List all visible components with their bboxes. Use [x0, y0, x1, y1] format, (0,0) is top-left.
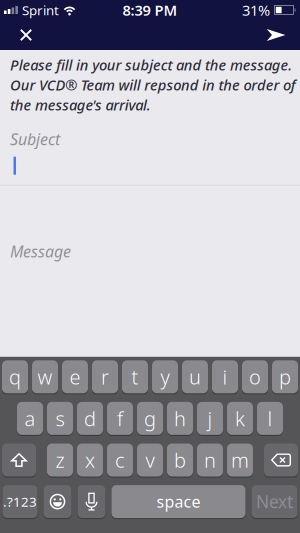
staticText: l	[267, 405, 272, 432]
staticText: c	[115, 447, 125, 473]
staticText: f	[117, 405, 123, 432]
button[interactable]: m	[227, 443, 253, 476]
staticText: g	[144, 405, 156, 432]
staticText: o	[249, 363, 261, 390]
staticText: v	[145, 447, 154, 473]
staticText: z	[55, 447, 64, 473]
staticText: r	[101, 363, 109, 390]
staticText: Next	[256, 490, 293, 513]
staticText: Please fill in your subject and the mess…	[10, 55, 296, 114]
staticText: Subject	[10, 128, 60, 150]
button[interactable]: Emoji	[43, 485, 71, 518]
staticText: a	[24, 405, 35, 432]
button[interactable]: n	[197, 443, 223, 476]
staticText: m	[231, 447, 249, 473]
button[interactable]: s	[47, 402, 73, 435]
button[interactable]: h	[167, 402, 193, 435]
staticText: x	[85, 447, 95, 473]
button[interactable]: Shift	[2, 443, 36, 476]
staticText: i	[222, 363, 227, 390]
staticText: space	[156, 491, 200, 512]
staticText: Sprint	[22, 1, 59, 19]
button[interactable]: Delete	[264, 443, 298, 476]
staticText: n	[204, 447, 216, 473]
button[interactable]: p	[272, 360, 298, 393]
staticText: b	[174, 447, 186, 473]
staticText: .?123	[3, 493, 37, 510]
staticText: 8:39 PM	[122, 0, 177, 20]
staticText: k	[235, 405, 245, 432]
button[interactable]: e	[62, 360, 88, 393]
button[interactable]: r	[92, 360, 118, 393]
button[interactable]: Next	[251, 485, 297, 518]
button[interactable]: o	[242, 360, 268, 393]
button[interactable]: space	[111, 485, 245, 518]
staticText: t	[131, 363, 138, 390]
button[interactable]: z	[47, 443, 73, 476]
button[interactable]: k	[227, 402, 253, 435]
staticText: h	[174, 405, 186, 432]
staticText: Message	[10, 241, 71, 262]
button[interactable]: Send	[261, 20, 291, 50]
button[interactable]: Subject	[10, 128, 300, 175]
staticText: u	[189, 363, 201, 390]
staticText: p	[279, 363, 291, 390]
staticText: d	[84, 405, 96, 432]
button[interactable]: d	[77, 402, 103, 435]
button[interactable]: f	[107, 402, 133, 435]
button[interactable]: j	[197, 402, 223, 435]
button[interactable]: q	[2, 360, 28, 393]
button[interactable]: Dictation	[77, 485, 105, 518]
button[interactable]: t	[122, 360, 148, 393]
button[interactable]: Close	[11, 20, 41, 50]
button[interactable]: g	[137, 402, 163, 435]
button[interactable]: Message	[10, 241, 300, 262]
button[interactable]: x	[77, 443, 103, 476]
button[interactable]: w	[32, 360, 58, 393]
button[interactable]: a	[17, 402, 43, 435]
staticText: 31%	[242, 0, 270, 20]
button[interactable]: i	[212, 360, 238, 393]
staticText: j	[207, 405, 212, 432]
button[interactable]: .?123	[2, 485, 37, 518]
button[interactable]: c	[107, 443, 133, 476]
staticText: s	[55, 405, 64, 432]
staticText: e	[69, 363, 80, 390]
staticText: y	[160, 363, 169, 390]
button[interactable]: l	[257, 402, 283, 435]
staticText: q	[9, 363, 21, 390]
button[interactable]: v	[137, 443, 163, 476]
staticText: w	[37, 363, 52, 390]
button[interactable]: u	[182, 360, 208, 393]
button[interactable]: b	[167, 443, 193, 476]
button[interactable]: y	[152, 360, 178, 393]
